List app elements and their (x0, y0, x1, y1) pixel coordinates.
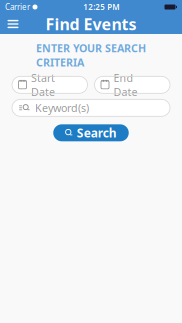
button[interactable]: Menu (0, 14, 26, 34)
staticText: Find Events (45, 13, 136, 35)
staticText: Carrier (5, 2, 30, 12)
staticText: End Date (113, 71, 137, 99)
staticText: ENTER YOUR SEARCH CRITERIA (36, 41, 146, 69)
button[interactable]: End Date (94, 76, 170, 93)
button[interactable]: Start Date (12, 76, 87, 93)
button[interactable]: Keyword(s) (12, 99, 170, 116)
staticText: Start Date (31, 71, 55, 99)
button[interactable]: Search (53, 124, 129, 141)
staticText: Keyword(s) (35, 101, 89, 115)
staticText: 12:25 PM (83, 2, 119, 12)
staticText: Search (77, 125, 117, 141)
